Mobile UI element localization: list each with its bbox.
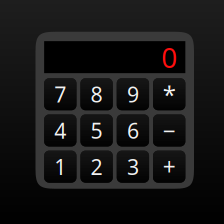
staticText: 3 bbox=[127, 152, 139, 181]
button[interactable]: * bbox=[153, 78, 185, 110]
staticText: 1 bbox=[54, 152, 66, 181]
button[interactable]: 7 bbox=[44, 78, 76, 110]
staticText: 9 bbox=[127, 80, 139, 108]
button[interactable]: 2 bbox=[80, 151, 113, 183]
button[interactable]: 6 bbox=[117, 114, 149, 146]
staticText: + bbox=[163, 152, 176, 182]
staticText: 6 bbox=[127, 116, 139, 145]
button[interactable]: 9 bbox=[117, 78, 149, 110]
staticText: 7 bbox=[54, 80, 66, 108]
staticText: 0 bbox=[161, 39, 177, 76]
staticText: * bbox=[163, 78, 176, 110]
button[interactable]: + bbox=[153, 151, 185, 183]
button[interactable]: 3 bbox=[117, 151, 149, 183]
button[interactable]: − bbox=[153, 114, 185, 146]
staticText: 8 bbox=[91, 80, 103, 108]
staticText: 5 bbox=[91, 116, 103, 145]
button[interactable]: 8 bbox=[80, 78, 113, 110]
staticText: 4 bbox=[54, 116, 66, 145]
button[interactable]: 4 bbox=[44, 114, 76, 146]
staticText: − bbox=[163, 115, 176, 145]
button[interactable]: 5 bbox=[80, 114, 113, 146]
button[interactable]: 1 bbox=[44, 151, 76, 183]
staticText: 2 bbox=[91, 152, 103, 181]
